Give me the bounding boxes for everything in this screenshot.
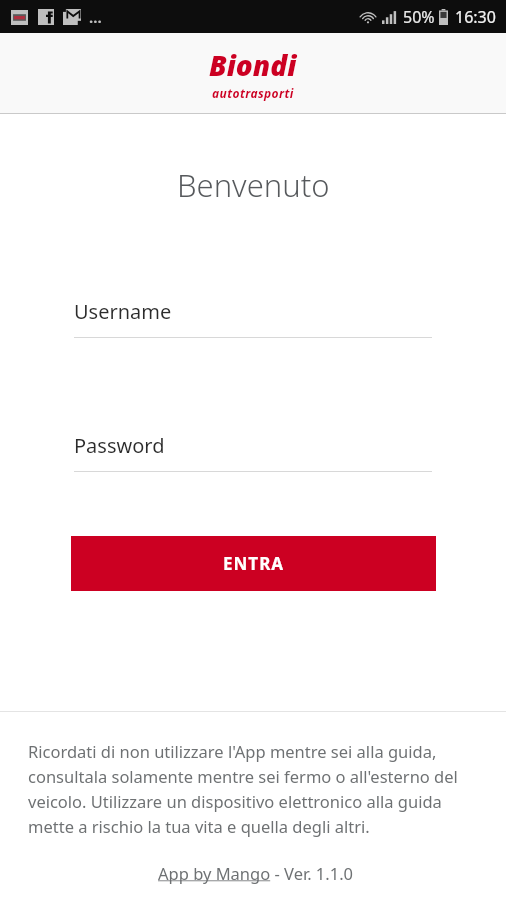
button[interactable]: App by Mango - Ver. 1.1.0 (158, 862, 354, 884)
button[interactable]: Password (74, 432, 432, 472)
staticText: Benvenuto (177, 164, 330, 206)
button[interactable]: ENTRA (71, 536, 436, 591)
staticText: Password (74, 432, 165, 459)
staticText: App by Mango - Ver. 1.1.0 (158, 862, 354, 884)
staticText: ... (89, 7, 102, 27)
staticText: autotrasporti (212, 85, 294, 101)
staticText: Ricordati di non utilizzare l'App mentre… (28, 740, 484, 838)
staticText: ENTRA (223, 552, 285, 575)
staticText: Biondi (209, 46, 297, 84)
button[interactable]: Username (74, 298, 432, 338)
staticText: Username (74, 298, 172, 325)
staticText: 50% (403, 6, 435, 28)
staticText: 16:30 (455, 6, 496, 28)
